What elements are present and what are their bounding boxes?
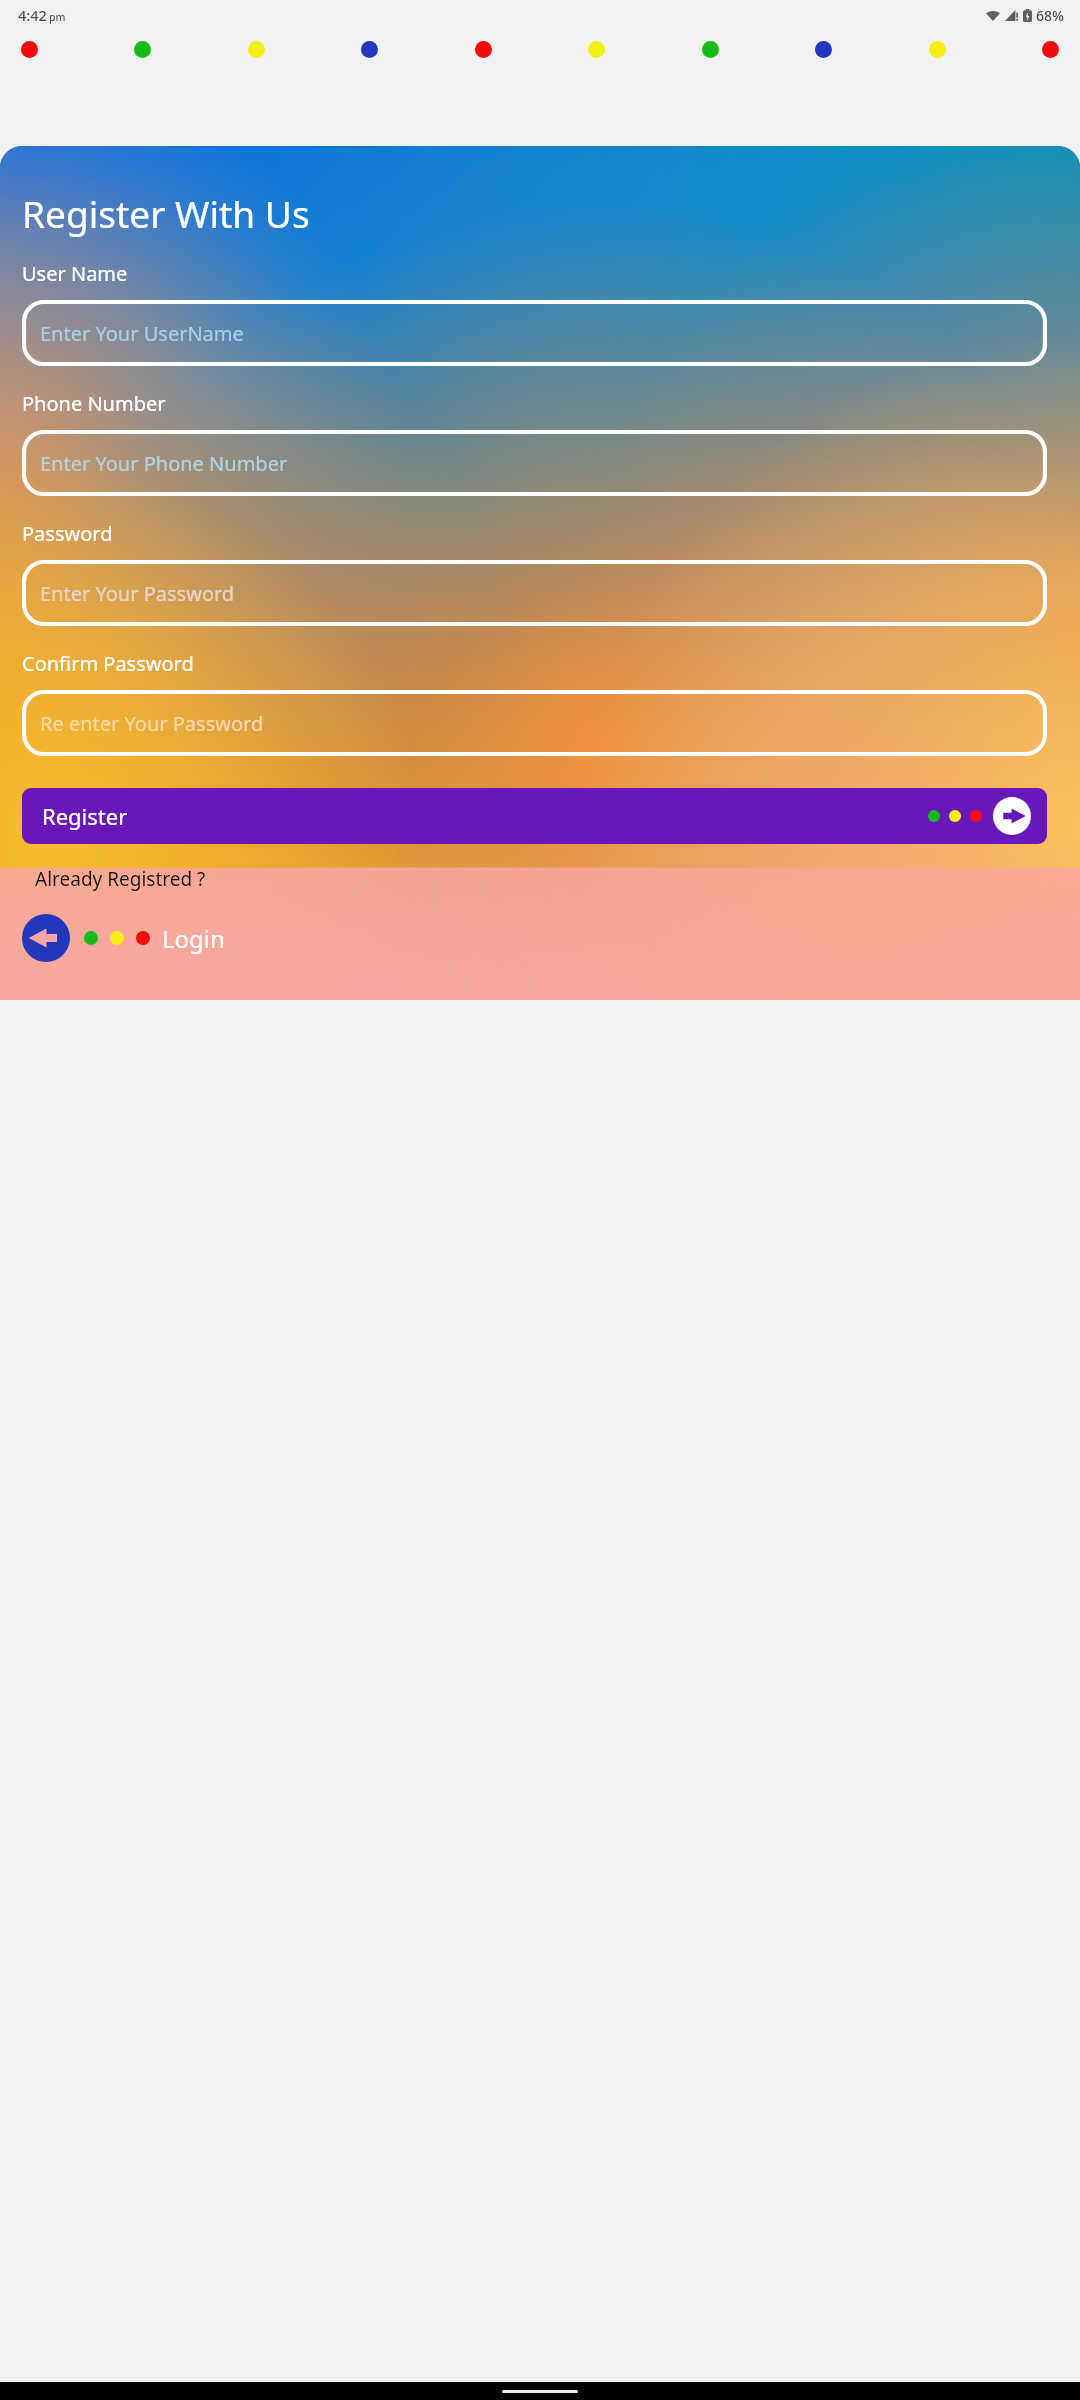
staticText: User Name xyxy=(22,260,128,287)
button[interactable]: Back to login xyxy=(22,914,225,962)
button[interactable]: Enter Your Password xyxy=(22,560,1047,626)
other: Submit registration xyxy=(993,797,1031,835)
staticText: Confirm Password xyxy=(22,650,194,677)
button[interactable]: Re enter Your Password xyxy=(22,690,1047,756)
staticText: Enter Your Phone Number xyxy=(40,450,288,477)
staticText: Password xyxy=(22,520,113,547)
staticText: Enter Your UserName xyxy=(40,320,244,347)
button[interactable]: Enter Your Phone Number xyxy=(22,430,1047,496)
staticText: Login xyxy=(162,922,225,955)
button[interactable]: Register xyxy=(22,788,1047,844)
staticText: Register xyxy=(42,801,128,831)
button[interactable]: Enter Your UserName xyxy=(22,300,1047,366)
staticText: 68% xyxy=(1036,6,1064,25)
staticText: Enter Your Password xyxy=(40,580,235,607)
staticText: Re enter Your Password xyxy=(40,710,264,737)
staticText: Phone Number xyxy=(22,390,166,417)
staticText: Register With Us xyxy=(22,188,310,238)
other: Back to login xyxy=(22,914,70,962)
staticText: 4:42 xyxy=(18,5,47,25)
staticText: Already Registred ? xyxy=(35,866,206,892)
staticText: pm xyxy=(49,10,66,24)
